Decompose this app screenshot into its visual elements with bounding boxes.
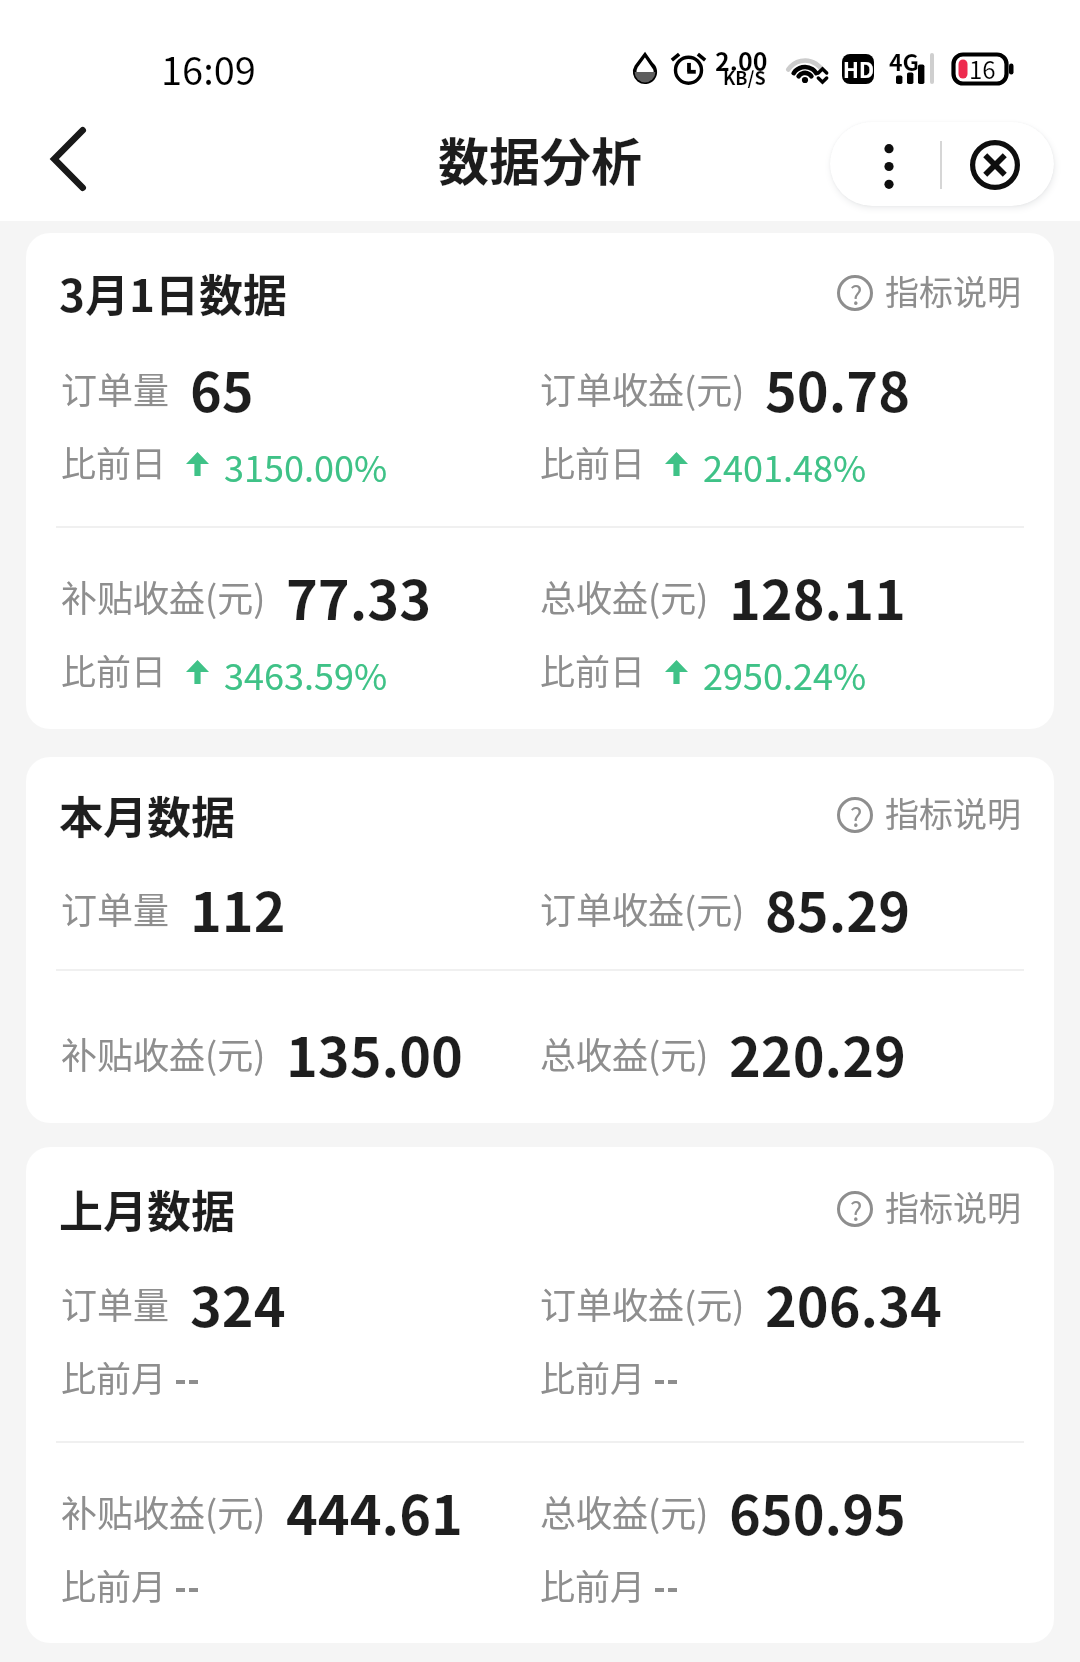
staticText: 77.33 <box>286 557 431 635</box>
button[interactable]: ? <box>831 790 1027 842</box>
button[interactable]: ? <box>831 1184 1027 1236</box>
button[interactable]: Close <box>942 122 1054 206</box>
staticText: 上月数据 <box>59 1177 235 1241</box>
staticText: 比前日 <box>540 644 646 695</box>
button[interactable]: ? <box>831 268 1027 320</box>
staticText: 比前月 <box>61 1559 167 1610</box>
staticText: ? <box>850 1191 863 1227</box>
staticText: 订单量 <box>61 1277 170 1329</box>
staticText: 135.00 <box>286 1014 463 1092</box>
staticText: 订单收益(元) <box>540 1277 745 1329</box>
staticText: 订单收益(元) <box>540 362 745 414</box>
staticText: 16:09 <box>161 41 256 96</box>
button[interactable] <box>26 233 1054 729</box>
staticText: 订单收益(元) <box>540 882 745 934</box>
staticText: 112 <box>190 869 286 947</box>
staticText: 补贴收益(元) <box>61 1027 266 1079</box>
staticText: 2.00 <box>715 42 768 78</box>
staticText: 指标说明 <box>885 788 1021 837</box>
staticText: 128.11 <box>729 557 906 635</box>
staticText: ? <box>850 275 863 311</box>
staticText: 指标说明 <box>885 1182 1021 1231</box>
staticText: 206.34 <box>765 1264 942 1342</box>
staticText: 指标说明 <box>885 266 1021 315</box>
button[interactable] <box>26 757 1054 1123</box>
staticText: 比前日 <box>61 436 167 487</box>
staticText: 补贴收益(元) <box>61 570 266 622</box>
staticText: 16 <box>969 51 996 86</box>
staticText: 4G <box>889 44 920 77</box>
button[interactable]: More options <box>830 122 942 206</box>
staticText: 2401.48% <box>703 440 867 492</box>
staticText: 总收益(元) <box>540 1485 709 1537</box>
staticText: 比前日 <box>61 644 167 695</box>
button[interactable]: Back <box>10 108 126 210</box>
staticText: 订单量 <box>61 362 170 414</box>
staticText: 本月数据 <box>59 783 235 847</box>
staticText: 补贴收益(元) <box>61 1485 266 1537</box>
staticText: 650.95 <box>729 1472 906 1550</box>
staticText: 2950.24% <box>703 648 867 700</box>
staticText: 220.29 <box>729 1014 906 1092</box>
staticText: ? <box>850 797 863 833</box>
staticText: 85.29 <box>765 869 910 947</box>
staticText: 总收益(元) <box>540 570 709 622</box>
staticText: 324 <box>190 1264 286 1342</box>
staticText: 比前月 <box>540 1351 646 1402</box>
staticText: 比前日 <box>540 436 646 487</box>
staticText: 比前月 <box>540 1559 646 1610</box>
staticText: HD <box>843 54 874 84</box>
staticText: 65 <box>190 349 254 427</box>
staticText: 3150.00% <box>224 440 388 492</box>
staticText: 数据分析 <box>438 122 643 192</box>
staticText: 3月1日数据 <box>59 261 287 325</box>
staticText: 订单量 <box>61 882 170 934</box>
staticText: 3463.59% <box>224 648 388 700</box>
staticText: 444.61 <box>286 1472 463 1550</box>
staticText: 总收益(元) <box>540 1027 709 1079</box>
staticText: 比前月 <box>61 1351 167 1402</box>
staticText: KB/S <box>723 64 766 90</box>
button[interactable] <box>26 1147 1054 1643</box>
staticText: 50.78 <box>765 349 910 427</box>
